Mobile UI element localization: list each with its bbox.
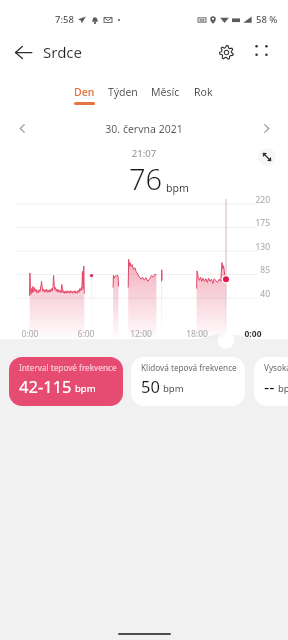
staticText: Interval tepové frekvence bbox=[19, 362, 117, 373]
button[interactable]: Settings bbox=[215, 41, 237, 63]
button[interactable]: Den bbox=[71, 85, 98, 105]
button[interactable]: Back bbox=[14, 42, 83, 62]
staticText: 18:00 bbox=[177, 328, 217, 340]
staticText: 0:00 bbox=[233, 328, 273, 340]
staticText: 40 bbox=[0, 288, 270, 300]
button[interactable]: Next day bbox=[257, 119, 275, 137]
button[interactable]: Previous day bbox=[13, 119, 31, 137]
button[interactable]: More options bbox=[250, 39, 272, 61]
staticText: 42-115 bbox=[19, 375, 72, 397]
staticText: 130 bbox=[0, 241, 270, 253]
button[interactable]: Klidová tepová frekvence bbox=[131, 357, 245, 406]
staticText: -- bbox=[264, 375, 275, 397]
button[interactable]: Vysoká tepová frekvence bbox=[254, 357, 288, 406]
staticText: 30. června 2021 bbox=[0, 122, 288, 136]
staticText: bpm bbox=[163, 382, 184, 395]
staticText: 58 % bbox=[256, 13, 278, 26]
button[interactable]: Expand chart bbox=[258, 148, 276, 166]
staticText: 76 bbox=[129, 159, 163, 198]
button[interactable]: Měsíc bbox=[148, 85, 183, 105]
staticText: Srdce bbox=[43, 42, 83, 62]
button[interactable]: Interval tepové frekvence bbox=[9, 357, 123, 406]
staticText: Klidová tepová frekvence bbox=[141, 362, 237, 373]
staticText: 50 bbox=[141, 375, 160, 397]
staticText: 12:00 bbox=[121, 328, 161, 340]
other: Back bbox=[14, 43, 33, 62]
staticText: 220 bbox=[0, 194, 270, 206]
button[interactable]: Rok bbox=[190, 85, 217, 105]
staticText: Týden bbox=[108, 85, 138, 99]
staticText: Rok bbox=[194, 85, 213, 99]
staticText: 7:58 bbox=[55, 13, 74, 26]
staticText: bpm bbox=[75, 382, 96, 395]
staticText: Vysoká tepová frekvence bbox=[264, 362, 288, 373]
button[interactable]: Týden bbox=[105, 85, 141, 105]
staticText: Měsíc bbox=[151, 85, 180, 99]
staticText: 21:07 bbox=[0, 147, 288, 160]
staticText: 0:00 bbox=[10, 328, 50, 340]
staticText: 6:00 bbox=[66, 328, 106, 340]
staticText: 85 bbox=[0, 264, 270, 276]
staticText: Den bbox=[74, 85, 95, 99]
staticText: bpm bbox=[166, 181, 189, 195]
staticText: 175 bbox=[0, 217, 270, 229]
staticText: bpm bbox=[278, 382, 288, 395]
